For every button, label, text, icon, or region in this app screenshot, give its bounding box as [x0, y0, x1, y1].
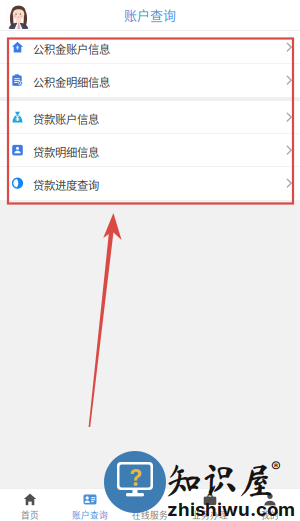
staticText: 业务办理 [192, 508, 228, 521]
staticText: 在线服务 [132, 508, 168, 521]
staticText: 首页 [21, 508, 39, 521]
staticText: 账户查询 [124, 5, 176, 24]
button[interactable]: 贷款账户信息 [0, 101, 300, 134]
button[interactable]: Profile [5, 2, 32, 29]
button[interactable]: 首页 [0, 488, 60, 521]
button[interactable]: 贷款明细信息 [0, 134, 300, 167]
staticText: 我的 [261, 508, 279, 521]
button[interactable]: 我的 [240, 488, 300, 521]
button[interactable]: 公积金账户信息 [0, 31, 300, 64]
button[interactable]: 业务办理 [180, 488, 240, 521]
staticText: ? [129, 464, 142, 491]
staticText: 公积金明细信息 [33, 73, 110, 90]
staticText: 知识屋 [166, 462, 274, 498]
staticText: ® [271, 458, 281, 476]
staticText: 贷款明细信息 [33, 143, 99, 160]
button[interactable]: 账户查询 [60, 488, 120, 521]
button[interactable]: 公积金明细信息 [0, 64, 300, 97]
button[interactable]: 在线服务 [120, 488, 180, 521]
staticText: 贷款账户信息 [33, 110, 99, 127]
button[interactable]: 贷款进度查询 [0, 167, 300, 200]
staticText: 公积金账户信息 [33, 40, 110, 57]
staticText: 账户查询 [72, 508, 108, 521]
staticText: zhishiwu.com [167, 498, 295, 521]
staticText: 贷款进度查询 [33, 176, 99, 193]
